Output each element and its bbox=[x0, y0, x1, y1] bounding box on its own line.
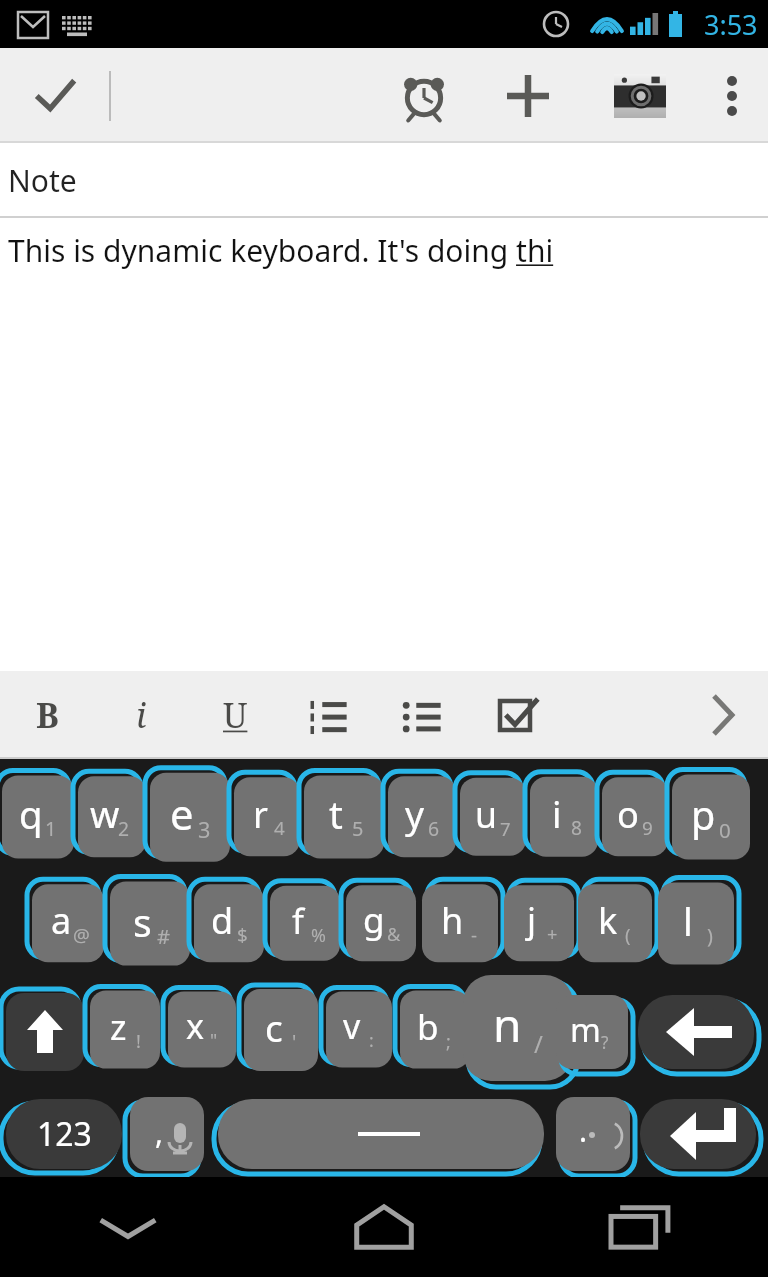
staticText: v bbox=[343, 1003, 361, 1049]
staticText: $ bbox=[237, 922, 248, 947]
staticText: z bbox=[110, 1003, 127, 1051]
staticText: 9 bbox=[642, 815, 653, 841]
staticText: m bbox=[570, 1007, 601, 1052]
staticText: 3 bbox=[198, 815, 211, 845]
button[interactable]: This is dynamic keyboard. It's doing thi bbox=[0, 218, 768, 671]
staticText: i bbox=[552, 789, 562, 839]
button[interactable]: Recent apps bbox=[512, 1177, 768, 1277]
button[interactable]: Add bbox=[472, 48, 584, 143]
button[interactable]: w bbox=[78, 779, 146, 863]
button[interactable]: b bbox=[400, 993, 470, 1073]
staticText: ! bbox=[136, 1029, 141, 1054]
staticText: U bbox=[223, 692, 248, 738]
button[interactable]: k bbox=[578, 887, 652, 967]
button[interactable]: Hide keyboard bbox=[0, 1177, 256, 1277]
staticText: d bbox=[211, 896, 234, 945]
button[interactable]: Bold bbox=[0, 671, 94, 759]
staticText: y bbox=[405, 788, 425, 839]
staticText: o bbox=[617, 789, 639, 838]
staticText: @ bbox=[73, 922, 90, 947]
staticText: p bbox=[691, 788, 716, 842]
staticText: ; bbox=[446, 1029, 451, 1054]
staticText: 6 bbox=[428, 815, 440, 841]
button[interactable]: f bbox=[270, 887, 340, 967]
button[interactable]: t bbox=[304, 779, 384, 863]
button[interactable]: Done bbox=[0, 48, 110, 143]
button[interactable]: g bbox=[346, 887, 416, 967]
staticText: Note bbox=[8, 160, 77, 201]
button[interactable]: Enter bbox=[640, 1099, 756, 1169]
button[interactable]: o bbox=[602, 779, 668, 863]
staticText: r bbox=[253, 789, 268, 838]
button[interactable]: Space bbox=[218, 1099, 544, 1169]
button[interactable]: c bbox=[244, 993, 318, 1073]
staticText: s bbox=[133, 895, 152, 948]
button[interactable]: m bbox=[556, 995, 628, 1069]
staticText: t bbox=[329, 788, 343, 840]
button[interactable]: n bbox=[463, 975, 573, 1081]
button[interactable]: Comma and voice input bbox=[130, 1097, 204, 1171]
button[interactable]: Bulleted list bbox=[376, 671, 470, 759]
button[interactable]: l bbox=[658, 887, 734, 967]
button[interactable]: v bbox=[326, 993, 392, 1073]
button[interactable]: q bbox=[2, 779, 74, 863]
staticText: 7 bbox=[500, 816, 511, 841]
staticText: : bbox=[369, 1028, 374, 1052]
button[interactable]: i bbox=[530, 779, 598, 863]
button[interactable]: Shift bbox=[6, 993, 84, 1071]
button[interactable]: More options bbox=[696, 48, 768, 143]
button[interactable]: p bbox=[672, 779, 750, 863]
staticText: h bbox=[441, 896, 464, 945]
staticText: ( bbox=[625, 922, 631, 947]
button[interactable]: Reminder bbox=[376, 48, 472, 143]
staticText: q bbox=[19, 788, 43, 840]
staticText: ) bbox=[707, 922, 713, 949]
button[interactable]: Numbered list bbox=[282, 671, 376, 759]
staticText: - bbox=[471, 922, 478, 947]
button[interactable]: Period and emoji bbox=[556, 1097, 630, 1171]
button[interactable]: j bbox=[504, 887, 574, 967]
button[interactable]: x bbox=[168, 993, 236, 1073]
button[interactable]: u bbox=[460, 779, 526, 863]
staticText: u bbox=[475, 790, 498, 839]
staticText: " bbox=[210, 1028, 218, 1052]
button[interactable]: Camera bbox=[584, 48, 696, 143]
button[interactable]: h bbox=[422, 887, 498, 967]
button[interactable]: Backspace bbox=[638, 995, 754, 1069]
button[interactable]: s bbox=[110, 887, 190, 967]
staticText: c bbox=[265, 1002, 283, 1052]
staticText: + bbox=[547, 922, 558, 947]
staticText: This is dynamic keyboard. It's doing thi bbox=[8, 230, 554, 271]
staticText: 123 bbox=[37, 1112, 92, 1156]
staticText: # bbox=[157, 922, 171, 950]
staticText: b bbox=[417, 1003, 439, 1051]
button[interactable]: 123 symbols bbox=[6, 1099, 122, 1169]
staticText: 8 bbox=[571, 815, 582, 841]
button[interactable]: y bbox=[388, 779, 456, 863]
button[interactable]: Underline bbox=[188, 671, 282, 759]
button[interactable]: More formatting bbox=[678, 671, 768, 759]
button[interactable]: z bbox=[90, 993, 160, 1073]
staticText: g bbox=[363, 896, 385, 944]
staticText: B bbox=[36, 692, 59, 738]
button[interactable]: e bbox=[150, 779, 230, 863]
staticText: k bbox=[598, 896, 618, 945]
staticText: w bbox=[90, 788, 120, 839]
staticText: i bbox=[136, 692, 147, 738]
staticText: l bbox=[683, 895, 693, 947]
staticText: ' bbox=[292, 1028, 297, 1054]
staticText: f bbox=[292, 897, 304, 944]
staticText: % bbox=[311, 923, 326, 947]
button[interactable]: d bbox=[194, 887, 264, 967]
button[interactable]: Home bbox=[256, 1177, 512, 1277]
button[interactable]: Italic bbox=[94, 671, 188, 759]
staticText: 5 bbox=[352, 815, 364, 842]
button[interactable]: r bbox=[234, 779, 300, 863]
button[interactable]: a bbox=[32, 887, 104, 967]
button[interactable]: Checklist bbox=[470, 671, 564, 759]
staticText: e bbox=[170, 785, 194, 842]
staticText: a bbox=[51, 896, 72, 945]
staticText: n bbox=[493, 993, 522, 1056]
staticText: 4 bbox=[274, 815, 285, 841]
button[interactable]: Note bbox=[0, 143, 768, 217]
